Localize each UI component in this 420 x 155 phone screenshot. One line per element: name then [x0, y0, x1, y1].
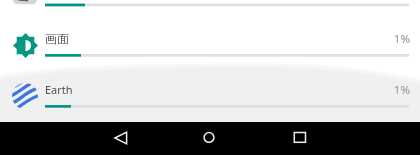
button[interactable] — [0, 0, 420, 10]
staticText: 画面 — [45, 31, 69, 46]
button[interactable]: 画面 — [0, 10, 420, 61]
button[interactable]: Earth — [0, 61, 420, 112]
staticText: 1% — [379, 82, 410, 98]
staticText: 1% — [379, 31, 410, 47]
button[interactable]: Home — [190, 122, 230, 155]
button[interactable]: Recent apps — [280, 122, 320, 155]
staticText: Earth — [45, 82, 73, 97]
button[interactable]: Back — [100, 122, 141, 155]
